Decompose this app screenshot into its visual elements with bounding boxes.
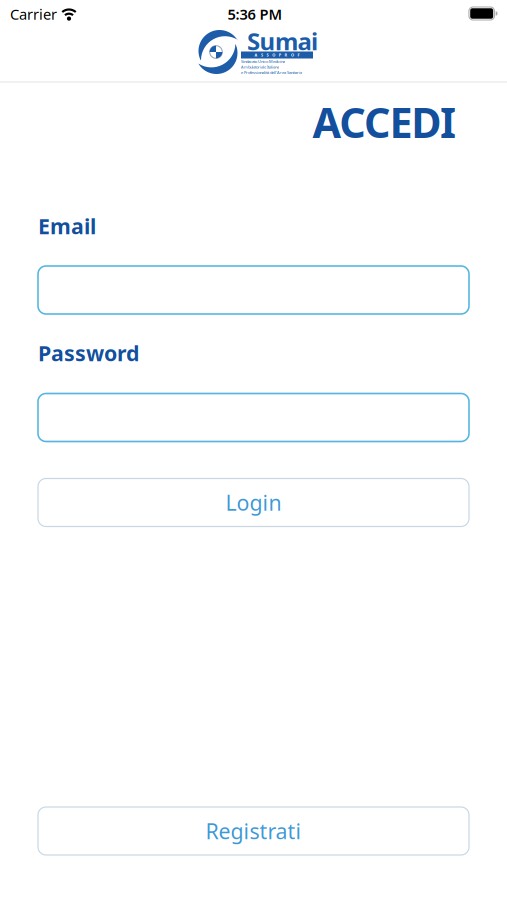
staticText: 5:36 PM [227, 4, 282, 24]
button[interactable]: Login [38, 478, 469, 526]
staticText: ASSOPROF [254, 52, 300, 58]
staticText: Ambulatoriale Italiana [241, 64, 279, 70]
staticText: Sindacato Unico Medicina [241, 59, 285, 64]
staticText: ACCEDI [312, 95, 456, 149]
staticText: Carrier [10, 4, 57, 24]
staticText: Registrati [205, 817, 301, 845]
staticText: e Professionalità dell'Area Sanitaria [241, 70, 302, 75]
button[interactable]: Registrati [38, 807, 469, 855]
staticText: Login [225, 488, 281, 517]
button[interactable] [38, 266, 469, 314]
button[interactable] [38, 393, 469, 441]
staticText: Sumai [247, 25, 318, 57]
staticText: Password [38, 339, 139, 367]
staticText: Email [38, 212, 96, 240]
